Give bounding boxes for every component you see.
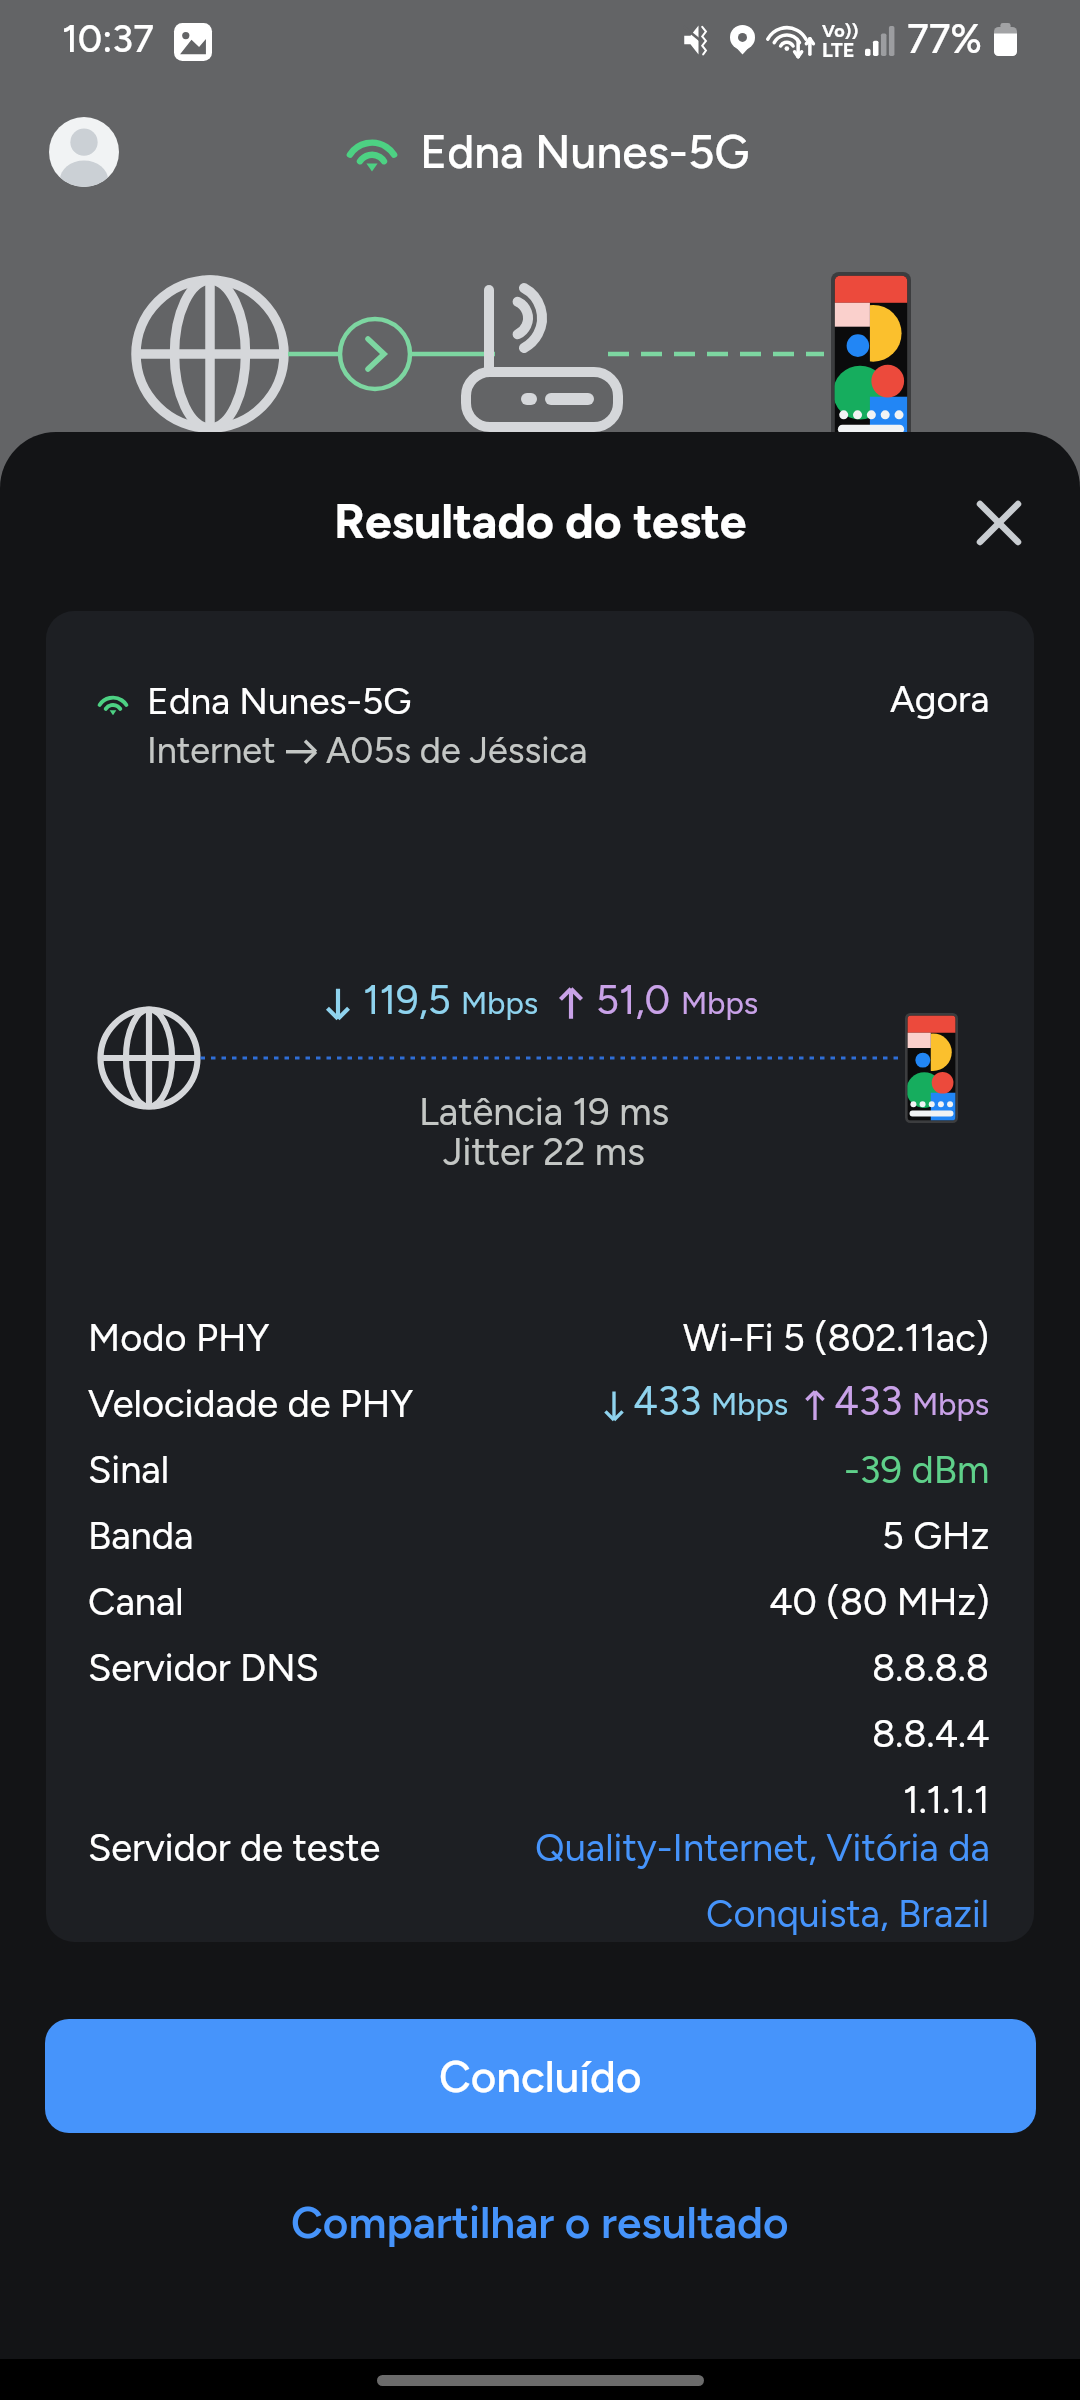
staticText: Edna Nunes-5G [420,124,750,179]
staticText: Canal [88,1579,184,1625]
staticText: -39 dBm [844,1447,990,1493]
staticText: 77% [907,15,983,63]
staticText: LTE [822,38,855,62]
staticText: 433 [834,1377,903,1425]
staticText: Agora [890,677,990,721]
staticText: Compartilhar o resultado [291,2196,789,2249]
button[interactable]: Compartilhar o resultado [291,2196,789,2249]
staticText: Banda [88,1513,194,1559]
button[interactable]: Fechar [955,479,1043,567]
staticText: Jitter 22 ms [443,1129,645,1175]
staticText: Resultado do teste [334,492,747,550]
staticText: 119,5 [363,976,451,1024]
staticText: Velocidade de PHY [88,1381,414,1427]
staticText: Mbps [912,1386,990,1423]
staticText: Mbps [461,985,539,1022]
staticText: 10:37 [62,16,154,62]
staticText: Latência 19 ms [419,1089,670,1135]
staticText: 5 GHz [882,1513,990,1559]
staticText: Conquista, Brazil [706,1891,990,1937]
staticText: A05s de Jéssica [326,729,588,772]
staticText: 8.8.8.8 [872,1645,990,1691]
staticText: Internet [147,729,276,772]
staticText: 40 (80 MHz) [769,1579,990,1625]
staticText: 51,0 [596,976,671,1024]
staticText: Mbps [711,1386,789,1423]
staticText: Sinal [88,1447,170,1493]
staticText: Quality-Internet, Vitória da [535,1825,990,1871]
staticText: Mbps [681,985,759,1022]
staticText: 1.1.1.1 [903,1777,990,1823]
button[interactable]: Conta [49,117,119,187]
staticText: 433 [633,1377,702,1425]
staticText: Servidor DNS [88,1645,319,1691]
staticText: Edna Nunes-5G [147,679,412,723]
staticText: Vo)) [822,20,859,42]
staticText: Servidor de teste [88,1825,381,1871]
staticText: Wi-Fi 5 (802.11ac) [683,1315,990,1361]
staticText: Concluído [439,2050,642,2103]
staticText: 8.8.4.4 [872,1711,990,1757]
staticText: Modo PHY [88,1315,270,1361]
button[interactable]: Concluído [45,2019,1036,2133]
